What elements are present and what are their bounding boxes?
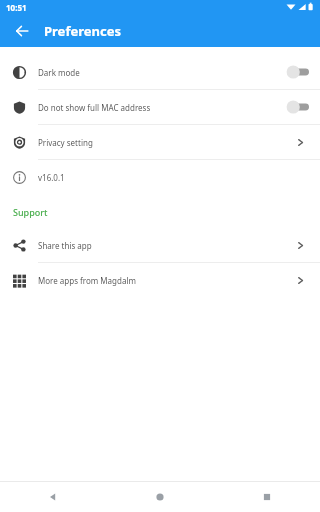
button[interactable]: Do not show full MAC address	[0, 90, 320, 124]
staticText: Preferences	[44, 22, 121, 40]
staticText: Privacy setting	[38, 137, 280, 148]
button[interactable]: Back	[0, 482, 106, 512]
button[interactable]: Back	[11, 20, 33, 42]
staticText: 10:51	[6, 2, 27, 13]
button[interactable]	[291, 133, 309, 151]
button[interactable]	[291, 271, 309, 289]
button[interactable]	[291, 236, 309, 254]
button[interactable]: v16.0.1	[0, 160, 320, 194]
button[interactable]: More apps from Magdalm	[0, 263, 320, 297]
staticText: Share this app	[38, 240, 280, 251]
staticText: More apps from Magdalm	[38, 275, 280, 286]
staticText: v16.0.1	[38, 172, 280, 183]
button[interactable]	[285, 98, 315, 116]
staticText: Dark mode	[38, 67, 280, 78]
button[interactable]: Recent apps	[213, 482, 320, 512]
button[interactable]: Privacy setting	[0, 125, 320, 159]
button[interactable]: Home	[106, 482, 213, 512]
button[interactable]	[285, 63, 315, 81]
staticText: Support	[13, 206, 48, 218]
button[interactable]: Share this app	[0, 228, 320, 262]
button[interactable]: Dark mode	[0, 55, 320, 89]
staticText: Do not show full MAC address	[38, 102, 280, 113]
